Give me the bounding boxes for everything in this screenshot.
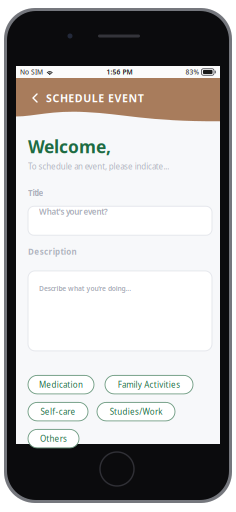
staticText: To schedule an event, please indicate... xyxy=(28,161,169,172)
staticText: 83% xyxy=(185,68,199,76)
staticText: What's your event? xyxy=(39,206,108,217)
staticText: Family Activities xyxy=(118,379,180,390)
button[interactable]: Medication xyxy=(28,375,94,394)
button[interactable]: Describe what you're doing... xyxy=(28,271,212,351)
staticText: Studies/Work xyxy=(110,406,162,417)
staticText: No SIM xyxy=(20,68,43,76)
staticText: Title xyxy=(28,188,43,198)
button[interactable]: Back xyxy=(24,90,46,106)
staticText: Medication xyxy=(39,379,83,390)
button[interactable]: What's your event? xyxy=(28,206,212,235)
staticText: Describe what you're doing... xyxy=(39,284,131,293)
button[interactable]: Self-care xyxy=(28,402,88,421)
button[interactable]: Studies/Work xyxy=(97,402,175,421)
staticText: Description xyxy=(28,246,76,257)
staticText: Welcome, xyxy=(28,135,111,158)
staticText: SCHEDULE EVENT xyxy=(46,91,144,105)
staticText: Others xyxy=(40,433,67,444)
staticText: Self-care xyxy=(41,406,75,417)
button[interactable]: Others xyxy=(28,429,79,448)
staticText: 1:56 PM xyxy=(106,68,132,76)
button[interactable]: Family Activities xyxy=(105,375,193,394)
